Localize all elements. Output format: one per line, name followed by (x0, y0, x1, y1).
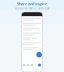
button[interactable]: New conversation (36, 52, 42, 57)
staticText: Share and inspire (17, 1, 47, 6)
button[interactable]: Send (38, 64, 41, 66)
staticText: any conversation with Ask (15, 7, 49, 10)
